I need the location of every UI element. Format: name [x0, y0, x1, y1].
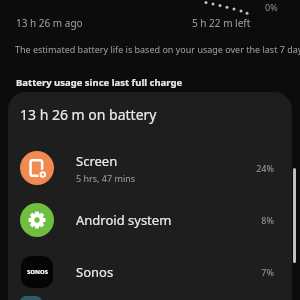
staticText: 13 h 26 m on battery [20, 105, 157, 124]
other: Android system battery usage [20, 203, 54, 237]
other: Sonos battery usage [21, 256, 53, 288]
staticText: 0% [265, 1, 278, 13]
staticText: 24% [256, 162, 274, 174]
staticText: 5 h 22 m left [192, 16, 251, 30]
staticText: 8% [261, 214, 274, 226]
staticText: SONOS [27, 268, 48, 276]
staticText: Battery usage since last full charge [16, 76, 183, 89]
other: Screen battery usage [20, 151, 54, 185]
staticText: 5 hrs, 47 mins [76, 172, 136, 184]
staticText: The estimated battery life is based on y… [15, 43, 300, 55]
staticText: 7% [261, 266, 274, 278]
button[interactable]: Sonos battery usage [8, 246, 292, 298]
staticText: Sonos [76, 263, 114, 281]
button[interactable]: Android system battery usage [8, 194, 292, 246]
staticText: Screen [76, 152, 118, 170]
staticText: Android system [76, 211, 172, 229]
button[interactable]: Screen battery usage [8, 142, 292, 194]
staticText: 13 h 26 m ago [16, 16, 83, 30]
